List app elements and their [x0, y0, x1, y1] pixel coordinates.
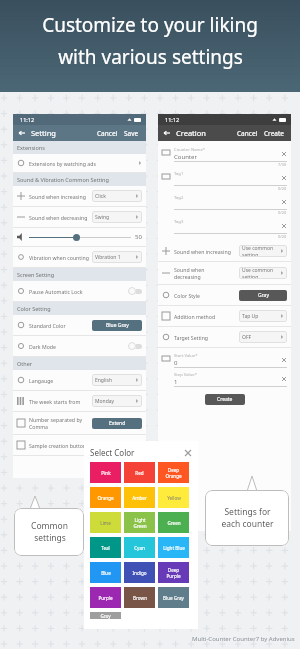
staticText: The week starts from — [29, 398, 92, 405]
button[interactable]: Use common setting — [239, 267, 287, 279]
button[interactable]: Create — [261, 129, 287, 138]
staticText: Swing — [95, 214, 110, 221]
button[interactable]: Extensions by watching ads — [13, 154, 146, 172]
button[interactable]: Cancel — [94, 129, 121, 138]
button[interactable]: Sound when increasing — [13, 186, 146, 206]
staticText: Cancel — [97, 129, 118, 138]
staticText: Number separated by Comma — [29, 416, 92, 430]
staticText: Pause Automatic Lock — [29, 288, 128, 295]
button[interactable]: Create — [205, 394, 245, 405]
button[interactable]: Blue Gray — [158, 587, 189, 608]
button[interactable]: OFF — [239, 331, 287, 343]
button[interactable]: Color Style — [158, 285, 291, 305]
button[interactable]: Green — [158, 512, 189, 533]
button[interactable]: Save — [104, 460, 138, 471]
button[interactable]: Amber — [124, 487, 155, 508]
staticText: 50 — [135, 233, 142, 241]
button[interactable]: Langauge — [13, 370, 146, 390]
button[interactable]: Gray — [90, 612, 121, 619]
button[interactable]: English — [92, 374, 142, 386]
button[interactable]: Clear — [281, 223, 287, 229]
button[interactable]: Light Blue — [158, 537, 189, 558]
button[interactable]: Save — [121, 129, 142, 138]
button[interactable]: Clear — [281, 151, 287, 157]
button[interactable]: Sample creation button — [13, 435, 146, 455]
button[interactable]: Dark Mode — [13, 336, 146, 356]
staticText: Sound & Vibration Common Setting — [17, 176, 109, 183]
button[interactable]: Clear — [281, 199, 287, 205]
button[interactable]: Teal — [90, 537, 121, 558]
button[interactable]: Yellow — [158, 487, 189, 508]
staticText: Blue Gray — [106, 322, 129, 329]
button[interactable]: Light Green — [124, 512, 155, 533]
staticText: Amber — [132, 495, 147, 501]
staticText: Extensions — [17, 144, 45, 151]
button[interactable]: Orange — [90, 487, 121, 508]
staticText: Vibration when counting — [29, 254, 92, 261]
button[interactable]: Red — [124, 462, 155, 483]
button[interactable]: Sound when decreasing — [158, 262, 291, 284]
button[interactable]: Indigo — [124, 562, 155, 583]
staticText: 0/20 — [278, 210, 287, 215]
button[interactable]: Clear — [281, 376, 287, 382]
button[interactable]: Lime — [90, 512, 121, 533]
staticText: Use common setting — [242, 245, 274, 257]
button[interactable]: Cancel — [234, 129, 261, 138]
button[interactable]: Gray — [239, 290, 287, 301]
button[interactable]: Clear — [281, 357, 287, 363]
staticText: Select Color — [90, 447, 184, 458]
button[interactable]: Vibration when counting — [13, 247, 146, 267]
button[interactable]: Swing — [92, 211, 142, 223]
staticText: Counter — [174, 153, 197, 161]
staticText: Extensions by watching ads — [29, 160, 138, 167]
staticText: Save — [116, 462, 127, 469]
button[interactable]: Blue Gray — [92, 320, 142, 331]
staticText: Other — [17, 360, 33, 367]
staticText: Lime — [100, 520, 111, 526]
button[interactable]: Pause Automatic Lock — [13, 281, 146, 301]
button[interactable]: Purple — [90, 587, 121, 608]
button[interactable]: Addition method — [158, 306, 291, 326]
button[interactable]: Sound when increasing — [158, 241, 291, 261]
staticText: Start Value* — [174, 353, 198, 359]
button[interactable]: Close — [184, 449, 192, 457]
staticText: Create — [264, 129, 284, 138]
button[interactable]: Vibration 1 — [92, 251, 142, 263]
button[interactable]: Click — [92, 190, 142, 202]
button[interactable]: Toggle — [128, 342, 142, 350]
button[interactable]: Number separated by Comma — [13, 412, 146, 434]
button[interactable]: Toggle — [128, 287, 142, 295]
button[interactable]: Deep Orange — [158, 462, 189, 483]
staticText: Multi-Counter Counter7 by Advenius — [192, 635, 295, 643]
button[interactable]: Tap Up — [239, 310, 287, 322]
staticText: Sample creation button — [29, 442, 142, 449]
button[interactable]: Use common setting — [239, 245, 287, 257]
button[interactable]: Clear — [281, 175, 287, 181]
staticText: Cancel — [237, 129, 258, 138]
button[interactable]: Monday — [92, 395, 142, 407]
staticText: Use common setting — [242, 267, 274, 279]
button[interactable]: Blue — [90, 562, 121, 583]
button[interactable]: Pink — [90, 462, 121, 483]
button[interactable]: The week starts from — [13, 391, 146, 411]
button[interactable]: Brown — [124, 587, 155, 608]
staticText: Customize to your liking — [42, 12, 258, 38]
staticText: Blue Gray — [163, 595, 184, 601]
button[interactable]: Target Setting — [158, 327, 291, 347]
button[interactable]: Standard Color — [13, 315, 146, 335]
staticText: Purple — [98, 595, 113, 601]
button[interactable]: Cyan — [124, 537, 155, 558]
staticText: Screen Setting — [17, 271, 55, 278]
button[interactable]: Back — [17, 128, 27, 138]
button[interactable]: Sound when decreasing — [13, 207, 146, 227]
staticText: Red — [135, 470, 144, 476]
button[interactable]: Back — [162, 128, 172, 138]
staticText: Deep Purple — [166, 567, 181, 579]
button[interactable]: Extend — [92, 418, 142, 429]
staticText: 1 — [174, 378, 178, 386]
staticText: Click — [95, 193, 106, 200]
button[interactable]: Deep Purple — [158, 562, 189, 583]
staticText: Color Setting — [17, 305, 51, 312]
